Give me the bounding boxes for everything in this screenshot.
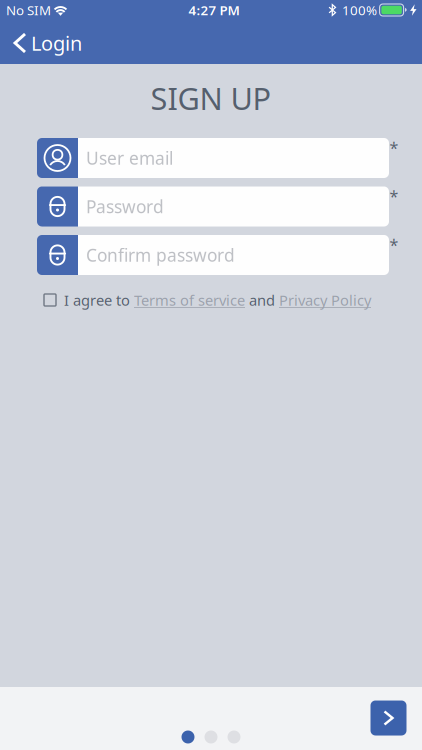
- staticText: *: [389, 137, 398, 158]
- button[interactable]: Privacy Policy: [275, 291, 367, 308]
- button[interactable]: Terms of service: [134, 291, 245, 308]
- staticText: *: [389, 185, 398, 207]
- staticText: Login: [31, 30, 82, 56]
- staticText: User email: [86, 146, 173, 169]
- button[interactable]: Password: [37, 186, 389, 226]
- staticText: SIGN UP: [150, 78, 271, 118]
- staticText: Password: [86, 195, 164, 218]
- button[interactable]: I agree to terms: [41, 291, 59, 309]
- button[interactable]: Login: [0, 21, 110, 63]
- button[interactable]: User email: [37, 138, 389, 178]
- staticText: 100%: [342, 1, 377, 19]
- staticText: No SIM: [6, 1, 51, 19]
- staticText: Confirm password: [86, 243, 235, 266]
- button[interactable]: Next: [370, 700, 406, 735]
- staticText: 4:27 PM: [188, 1, 239, 19]
- staticText: *: [389, 234, 398, 255]
- button[interactable]: Confirm password: [37, 235, 389, 275]
- staticText: I agree to Terms of service and Privacy …: [64, 290, 371, 310]
